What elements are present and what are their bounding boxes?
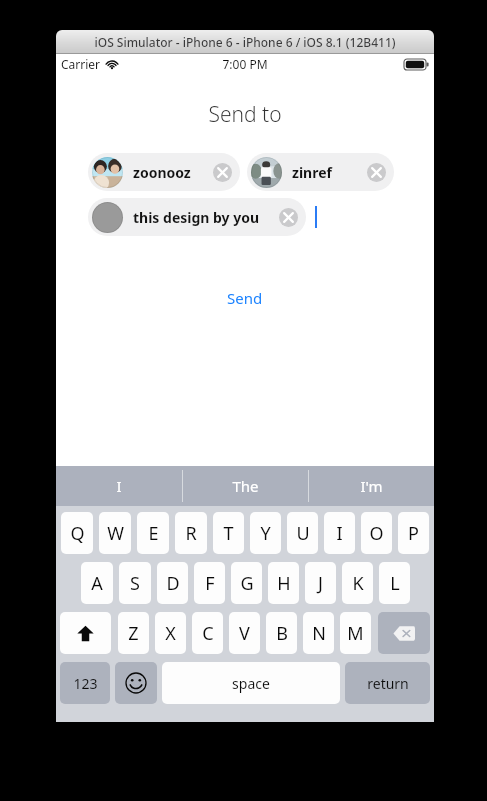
button[interactable]: E xyxy=(137,512,169,554)
staticText: W xyxy=(107,521,124,546)
staticText: iOS Simulator - iPhone 6 - iPhone 6 / iO… xyxy=(94,34,396,50)
staticText: C xyxy=(202,621,214,646)
staticText: Y xyxy=(260,521,271,546)
staticText: N xyxy=(312,621,326,646)
button[interactable]: K xyxy=(342,562,373,604)
button[interactable]: N xyxy=(303,612,334,654)
button[interactable]: zoonooz xyxy=(88,153,240,191)
staticText: P xyxy=(408,521,419,546)
button[interactable]: I xyxy=(324,512,355,554)
button[interactable]: 123 xyxy=(60,662,110,704)
button[interactable]: Backspace xyxy=(378,612,430,654)
staticText: V xyxy=(239,621,250,646)
button[interactable]: space xyxy=(162,662,340,704)
button[interactable]: return xyxy=(345,662,430,704)
button[interactable]: I'm xyxy=(309,466,434,506)
staticText: X xyxy=(165,621,176,646)
button[interactable]: this design by you xyxy=(88,198,306,236)
button[interactable]: L xyxy=(379,562,410,604)
staticText: space xyxy=(232,674,270,693)
staticText: S xyxy=(130,571,140,596)
staticText: H xyxy=(277,571,291,596)
button[interactable]: B xyxy=(266,612,297,654)
button[interactable]: Send xyxy=(207,282,283,314)
staticText: I xyxy=(116,476,122,496)
staticText: D xyxy=(166,571,180,596)
staticText: this design by you xyxy=(133,208,273,227)
button[interactable]: The xyxy=(183,466,308,506)
button[interactable]: Y xyxy=(250,512,281,554)
staticText: zoonooz xyxy=(133,163,207,182)
button[interactable]: R xyxy=(175,512,207,554)
staticText: O xyxy=(369,521,384,546)
button[interactable]: C xyxy=(192,612,223,654)
button[interactable]: F xyxy=(194,562,225,604)
button[interactable]: P xyxy=(398,512,429,554)
button[interactable]: S xyxy=(119,562,151,604)
staticText: I xyxy=(336,521,343,546)
staticText: F xyxy=(205,571,215,596)
staticText: T xyxy=(223,521,234,546)
staticText: Q xyxy=(70,521,85,546)
staticText: K xyxy=(352,571,364,596)
button[interactable]: G xyxy=(231,562,262,604)
staticText: zinref xyxy=(292,163,361,182)
staticText: 7:00 PM xyxy=(222,56,268,72)
button[interactable]: V xyxy=(229,612,260,654)
staticText: Send xyxy=(227,288,263,308)
staticText: I'm xyxy=(360,476,383,496)
button[interactable]: O xyxy=(361,512,392,554)
button[interactable]: Z xyxy=(118,612,149,654)
staticText: return xyxy=(367,674,409,693)
button[interactable]: T xyxy=(213,512,244,554)
staticText: Carrier xyxy=(61,56,101,72)
staticText: J xyxy=(318,571,323,596)
button[interactable]: Remove this design by you xyxy=(279,208,298,227)
button[interactable]: X xyxy=(155,612,186,654)
staticText: B xyxy=(276,621,288,646)
button[interactable]: D xyxy=(157,562,188,604)
staticText: R xyxy=(185,521,197,546)
button[interactable]: I xyxy=(56,466,182,506)
button[interactable]: A xyxy=(81,562,113,604)
staticText: L xyxy=(390,571,400,596)
staticText: Send to xyxy=(56,100,434,129)
button[interactable]: Remove zoonooz xyxy=(213,163,232,182)
button[interactable]: H xyxy=(268,562,299,604)
staticText: A xyxy=(91,571,103,596)
staticText: E xyxy=(148,521,159,546)
button[interactable]: Remove zinref xyxy=(367,163,386,182)
button[interactable]: J xyxy=(305,562,336,604)
staticText: The xyxy=(232,476,259,496)
button[interactable]: Emoji xyxy=(115,662,157,704)
button[interactable]: Q xyxy=(61,512,93,554)
staticText: M xyxy=(347,621,364,646)
staticText: Z xyxy=(128,621,139,646)
button[interactable]: U xyxy=(287,512,318,554)
button[interactable]: M xyxy=(340,612,371,654)
staticText: U xyxy=(296,521,310,546)
staticText: G xyxy=(240,571,254,596)
staticText: 123 xyxy=(73,674,98,693)
button[interactable]: Shift xyxy=(60,612,111,654)
button[interactable]: zinref xyxy=(247,153,394,191)
button[interactable]: W xyxy=(99,512,131,554)
